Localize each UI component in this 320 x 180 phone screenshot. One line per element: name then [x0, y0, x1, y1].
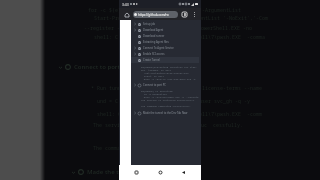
staticText: The command completed successfully. [141, 104, 192, 107]
staticText: 3:43 [122, 2, 129, 7]
staticText: Start-Process -FilePath pwsh -ArgumentLi… [94, 15, 269, 22]
staticText: The service sshd-agent was started suc c… [93, 122, 244, 129]
staticText: The command completed successfully. [93, 145, 202, 152]
button[interactable]: Create Tunnel [131, 57, 199, 63]
staticText: cd -e properties [141, 92, 167, 95]
button[interactable]: Download Agent [131, 27, 199, 33]
button[interactable]: Extracting Agent files [131, 39, 199, 45]
staticText: ##[debug]Evaluating condition for step: … [141, 65, 199, 68]
staticText: Download Agent [143, 28, 164, 32]
button[interactable]: More options [191, 11, 198, 18]
staticText: ##[debug] is executing [141, 89, 173, 92]
staticText: Made the tunnel to the Dev Tab Now [143, 111, 188, 115]
staticText: bash -O /bin/sh /usr/bin/pwsh.EXE -e -sp… [141, 77, 199, 80]
staticText: The service is installed successfully. [141, 98, 196, 101]
staticText: Set up job [143, 22, 156, 26]
button[interactable]: Connect To Agent Service [131, 45, 199, 51]
button[interactable]: Connect to port PC [131, 82, 199, 88]
staticText: bash -O /usr/bin/pwsh.EXE -e --execute -… [141, 95, 199, 98]
button[interactable]: Made the tunnel to the Dev Tab Now [131, 110, 199, 116]
staticText: Download runner [143, 34, 165, 38]
staticText: shell: C:\actions\run.cmd PowerShell\7\p… [94, 34, 266, 41]
staticText: shell: C:\Win\cmd.exe PowerShell\7\pwsh.… [97, 111, 263, 118]
staticText: 8 [184, 13, 186, 17]
staticText: input: in GHCT [141, 74, 164, 77]
button[interactable]: Recents [131, 167, 142, 178]
button[interactable]: Home [122, 10, 131, 19]
staticText: und = C:\code\tunnel --install --user sv… [97, 98, 251, 105]
staticText: Connect To Agent Service [143, 46, 174, 50]
staticText: env: trigger: py GHCT [141, 68, 172, 71]
staticText: Connect to port PC [143, 83, 166, 87]
staticText: --register --unattended --replace -c Pow… [84, 25, 253, 32]
staticText: Made the tunnel to the Dev Tab Now [87, 168, 194, 176]
button[interactable]: Back [178, 167, 189, 178]
button[interactable]: Enable SCI access [131, 51, 199, 57]
button[interactable]: Home [155, 167, 166, 178]
button[interactable]: Set up job [131, 21, 199, 27]
staticText: for -c ${e}:GH_TOKEN Start-Process -W -A… [88, 7, 242, 14]
staticText: Extracting Agent files [143, 40, 169, 44]
staticText: * Run tunnel connect --accept-server-lic… [91, 85, 263, 92]
staticText: Connect to port PC [74, 63, 129, 71]
staticText: /opt/hostedtoolcache/runner/bin Segment … [141, 71, 199, 74]
staticText: Create Tunnel [143, 58, 160, 62]
staticText: https://github.com/ro [138, 13, 169, 17]
button[interactable]: Download runner [131, 33, 199, 39]
staticText: Enable SCI access [143, 52, 165, 56]
button[interactable]: Tabs [180, 10, 189, 19]
button[interactable]: https://github.com/ro [133, 11, 178, 18]
